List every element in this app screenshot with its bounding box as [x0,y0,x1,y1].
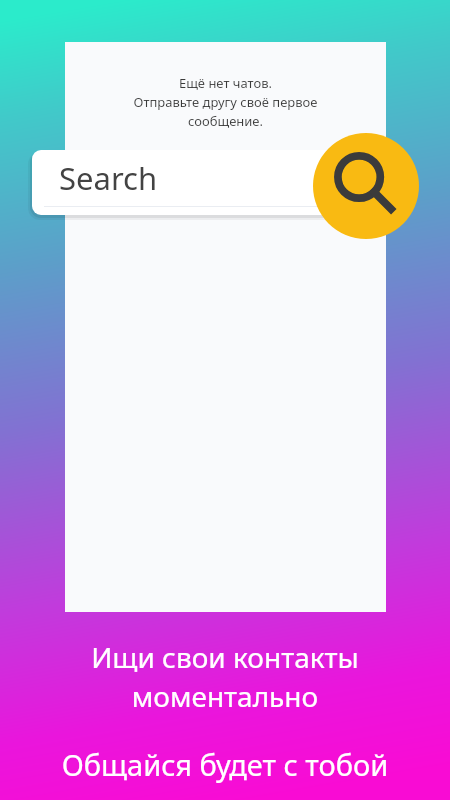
staticText: Search [59,157,158,199]
button[interactable]: Search [313,133,419,239]
staticText: Ещё нет чатов. Отправьте другу своё перв… [65,74,386,130]
button[interactable]: Search [32,150,346,215]
staticText: Общайся будет с тобой [6,745,444,784]
staticText: Ищи свои контакты моментально [8,638,442,715]
